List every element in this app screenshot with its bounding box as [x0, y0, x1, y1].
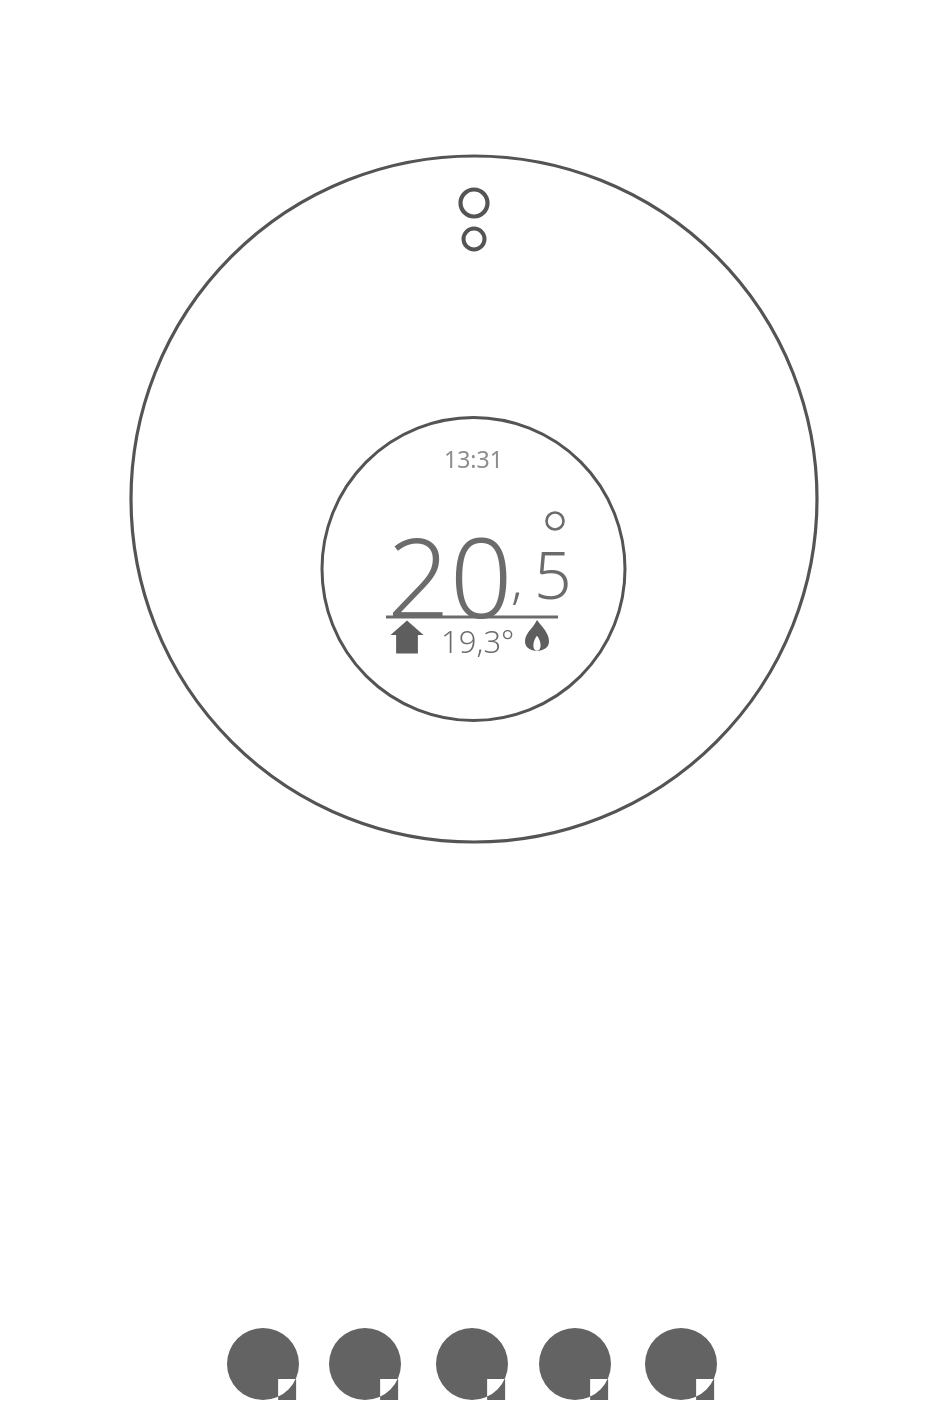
button[interactable]: Thermostat — [0, 0, 950, 1407]
button[interactable]: Messages — [0, 0, 950, 1407]
